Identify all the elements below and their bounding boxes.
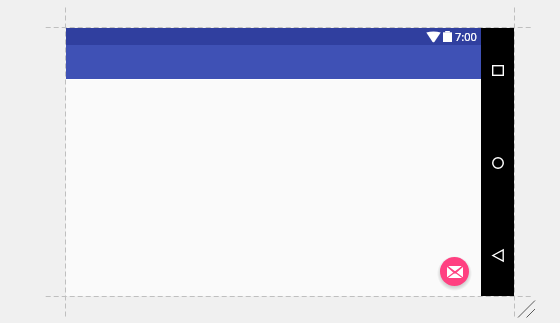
button[interactable]: Recent apps <box>481 54 514 86</box>
button[interactable]: Compose email <box>440 257 469 286</box>
button[interactable]: Back <box>481 239 514 271</box>
staticText: 7:00 <box>455 29 477 44</box>
button[interactable]: Home <box>481 147 514 179</box>
